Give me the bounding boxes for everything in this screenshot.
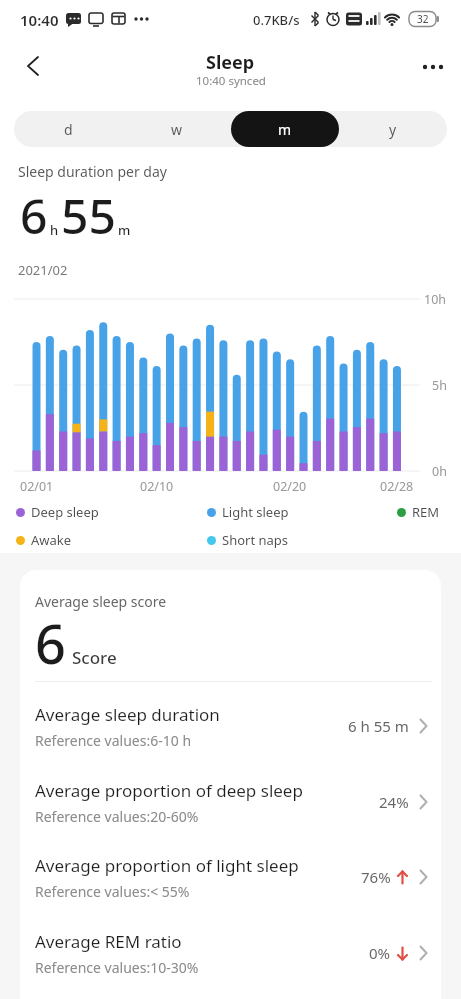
staticText: 6 [35,606,66,680]
staticText: Reference values:20-60% [35,807,199,826]
staticText: 02/01 [20,478,54,495]
staticText: Score [72,646,117,669]
staticText: Average proportion of light sleep [35,854,299,877]
staticText: REM [412,503,440,521]
staticText: Deep sleep [31,503,99,521]
staticText: 5h [432,377,447,394]
button[interactable]: w [123,111,231,147]
staticText: Sleep [206,50,255,75]
staticText: 02/10 [140,478,174,495]
staticText: Average proportion of deep sleep [35,779,303,802]
staticText: m [118,221,131,239]
staticText: 10:40 synced [196,73,266,89]
staticText: Average sleep duration [35,703,220,726]
staticText: 10:40 [20,10,59,30]
staticText: 32 [417,12,429,26]
staticText: m [278,120,292,139]
staticText: Short naps [222,531,289,549]
staticText: 02/20 [273,478,307,495]
staticText: 10h [424,291,447,308]
staticText: h [50,221,59,239]
button[interactable]: y [339,111,447,147]
button[interactable]: Average proportion of light sleep [35,851,428,903]
staticText: Reference values:10-30% [35,958,199,977]
staticText: 55 [61,183,116,248]
button[interactable]: d [14,111,123,147]
button[interactable] [415,52,451,82]
staticText: 24% [379,792,409,812]
button[interactable]: m [231,111,339,147]
button[interactable]: Average REM ratio [35,927,428,979]
staticText: Light sleep [222,503,289,521]
staticText: d [64,120,73,139]
staticText: 0.7KB/s [253,11,300,29]
staticText: Reference values:6-10 h [35,731,192,750]
staticText: 0h [432,463,447,480]
staticText: y [389,120,397,139]
staticText: Average REM ratio [35,930,182,953]
staticText: w [171,120,183,139]
staticText: Average sleep score [35,592,167,611]
staticText: Sleep duration per day [18,162,167,181]
staticText: 6 [20,183,48,248]
button[interactable]: Average sleep duration [35,700,428,752]
staticText: 02/28 [380,478,414,495]
button[interactable]: Average proportion of deep sleep [35,776,428,828]
staticText: 6 h 55 m [348,716,409,736]
button[interactable] [16,48,52,84]
staticText: Reference values:< 55% [35,882,190,901]
staticText: Awake [31,531,72,549]
staticText: 0% [369,943,391,963]
staticText: 76% [361,867,391,887]
staticText: 2021/02 [18,261,68,279]
